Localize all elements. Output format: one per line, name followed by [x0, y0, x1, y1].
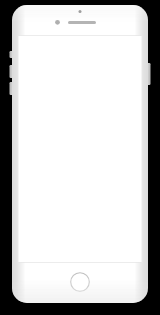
button[interactable]: iPhone device mockup with blank screen [0, 0, 160, 315]
